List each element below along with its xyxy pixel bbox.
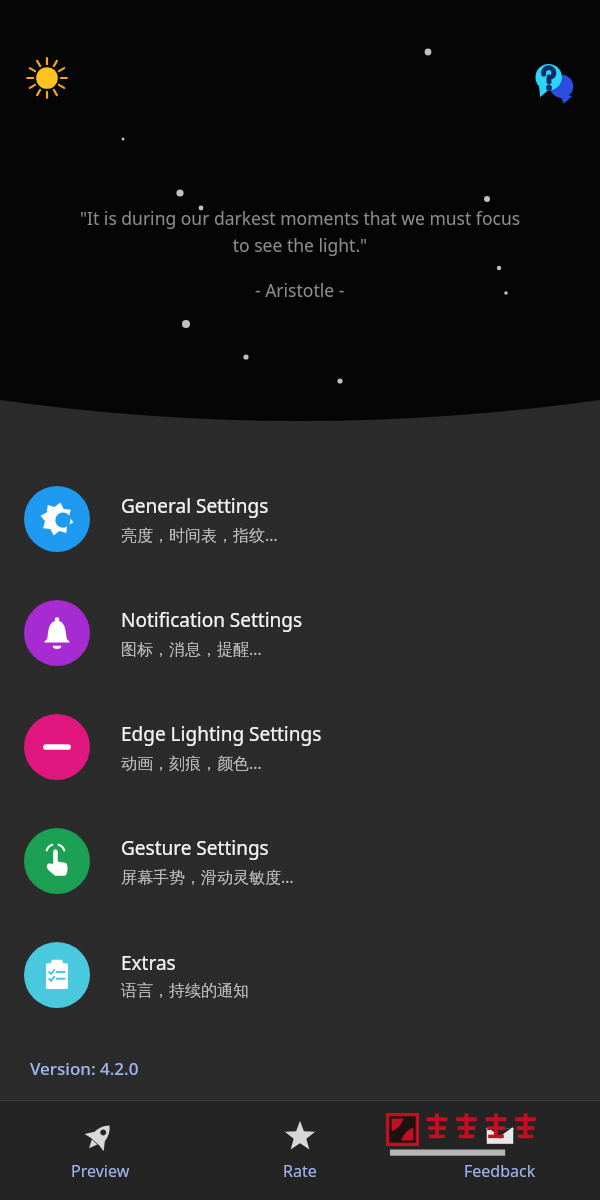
- button[interactable]: Toggle theme: [24, 55, 70, 101]
- staticText: 亮度，时间表，指纹…: [121, 524, 278, 546]
- staticText: Version: 4.2.0: [30, 1057, 139, 1080]
- button[interactable]: Rate: [200, 1101, 400, 1200]
- staticText: Preview: [71, 1160, 130, 1182]
- staticText: "It is during our darkest moments that w…: [72, 206, 528, 257]
- staticText: 动画，刻痕，颜色…: [121, 752, 262, 774]
- staticText: Gesture Settings: [121, 835, 269, 861]
- button[interactable]: General Settings: [0, 462, 600, 576]
- staticText: - Aristotle -: [255, 278, 345, 302]
- staticText: 图标，消息，提醒…: [121, 638, 262, 660]
- staticText: General Settings: [121, 493, 269, 519]
- staticText: Rate: [283, 1160, 317, 1182]
- button[interactable]: Help: [526, 54, 580, 108]
- staticText: 屏幕手势，滑动灵敏度…: [121, 866, 294, 888]
- staticText: Feedback: [464, 1160, 536, 1182]
- button[interactable]: Version: 4.2.0: [30, 1057, 139, 1080]
- button[interactable]: Edge Lighting Settings: [0, 690, 600, 804]
- button[interactable]: Gesture Settings: [0, 804, 600, 918]
- button[interactable]: Notification Settings: [0, 576, 600, 690]
- button[interactable]: Preview: [0, 1101, 200, 1200]
- staticText: Notification Settings: [121, 607, 303, 633]
- button[interactable]: Feedback: [400, 1101, 600, 1200]
- staticText: Extras: [121, 950, 176, 976]
- staticText: Edge Lighting Settings: [121, 721, 322, 747]
- button[interactable]: Extras: [0, 918, 600, 1032]
- staticText: 语言，持续的通知: [121, 981, 249, 1001]
